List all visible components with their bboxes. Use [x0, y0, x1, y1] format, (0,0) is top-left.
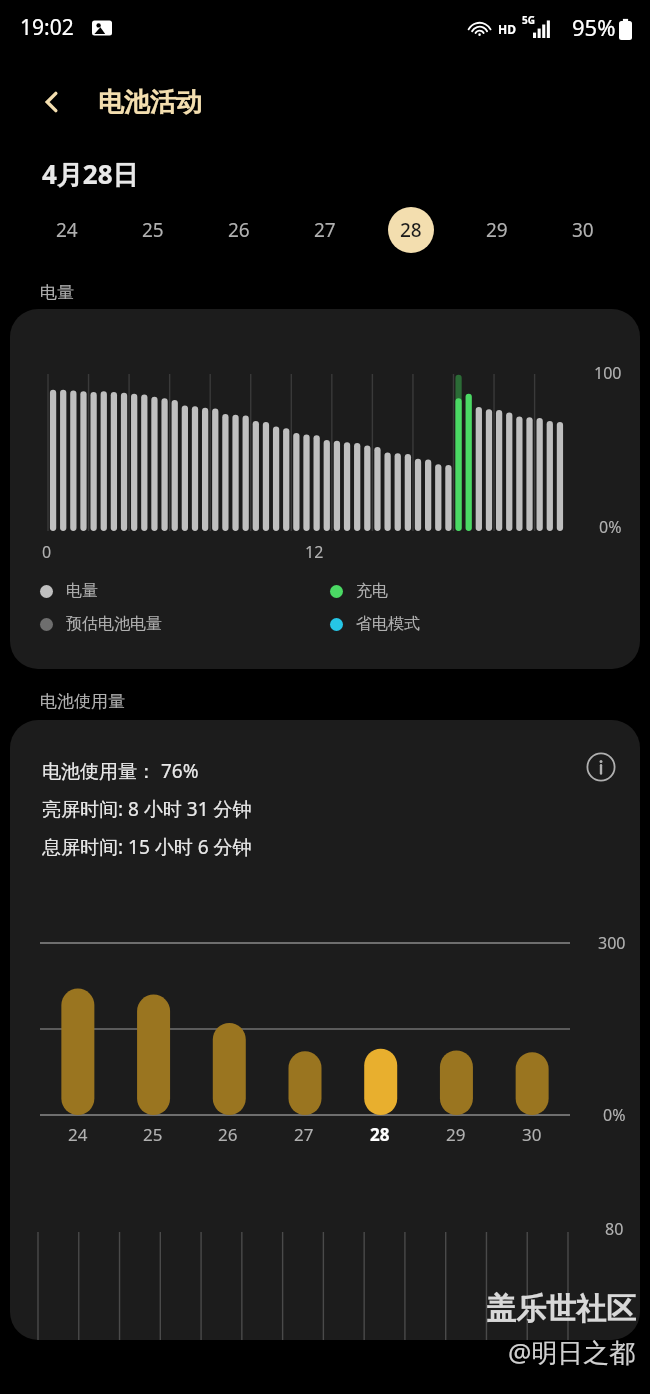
button[interactable]: 30 [540, 192, 626, 268]
staticText: 27 [314, 217, 336, 243]
staticText: 盖乐世社区 [486, 1290, 636, 1328]
button[interactable]: 28 [368, 192, 454, 268]
staticText: @明日之都 [508, 1334, 636, 1370]
staticText: 100 [594, 362, 622, 384]
staticText: 300 [598, 932, 626, 954]
staticText: 充电 [356, 581, 388, 601]
staticText: 25 [143, 1123, 163, 1146]
staticText: 电池活动 [98, 86, 202, 119]
staticText: 4月28日 [42, 156, 139, 192]
staticText: 0% [603, 1104, 626, 1126]
staticText: 预估电池电量 [66, 614, 162, 634]
button[interactable]: 29 [454, 192, 540, 268]
staticText: 电池使用量： 76% [42, 758, 199, 784]
button[interactable]: 25 [110, 192, 196, 268]
button[interactable]: 27 [282, 192, 368, 268]
button[interactable]: Back [28, 78, 76, 126]
staticText: 80 [605, 1218, 624, 1240]
staticText: 亮屏时间: 8 小时 31 分钟 [42, 796, 252, 822]
button[interactable]: 26 [196, 192, 282, 268]
staticText: 24 [56, 217, 78, 243]
staticText: 5G [522, 13, 535, 27]
staticText: 0% [599, 516, 622, 538]
staticText: 0 [42, 541, 52, 563]
staticText: 24 [68, 1123, 88, 1146]
staticText: 28 [400, 217, 422, 243]
staticText: 省电模式 [356, 614, 420, 634]
staticText: 26 [228, 217, 250, 243]
staticText: 27 [294, 1123, 314, 1146]
staticText: 息屏时间: 15 小时 6 分钟 [42, 834, 252, 860]
staticText: 30 [572, 217, 594, 243]
staticText: 29 [446, 1123, 466, 1146]
staticText: 电池使用量 [40, 691, 125, 712]
button[interactable]: 24 [24, 192, 110, 268]
staticText: 95% [572, 12, 616, 42]
staticText: 29 [486, 217, 508, 243]
staticText: 12 [305, 541, 324, 563]
staticText: 19:02 [20, 13, 74, 42]
staticText: 25 [142, 217, 164, 243]
button[interactable]: Info [578, 744, 624, 790]
staticText: 30 [522, 1123, 542, 1146]
staticText: 28 [370, 1123, 390, 1146]
staticText: 26 [218, 1123, 238, 1146]
staticText: HD [498, 21, 516, 37]
staticText: 电量 [40, 282, 74, 303]
staticText: 电量 [66, 581, 98, 601]
button[interactable]: 100 [10, 309, 640, 669]
